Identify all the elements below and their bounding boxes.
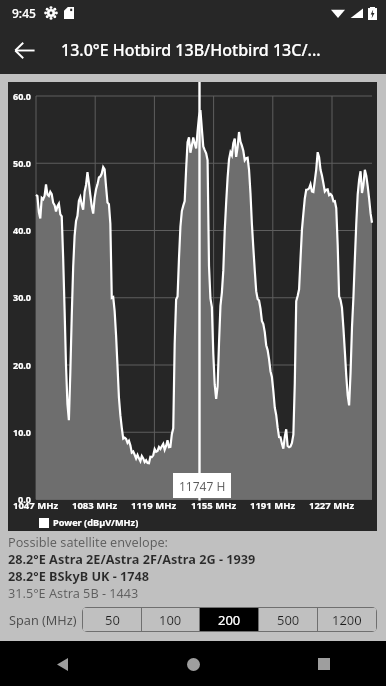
- staticText: Possible satellite envelope:: [8, 533, 169, 550]
- staticText: 0.0: [18, 493, 31, 505]
- button[interactable]: 200: [200, 608, 258, 631]
- button[interactable]: 1200: [318, 608, 376, 631]
- button[interactable]: 500: [259, 608, 317, 631]
- staticText: 100: [159, 611, 182, 629]
- button[interactable]: 100: [142, 608, 199, 631]
- staticText: 28.2°E Astra 2E/Astra 2F/Astra 2G - 1939: [8, 550, 256, 567]
- staticText: 20.0: [13, 359, 31, 371]
- button[interactable]: Back: [40, 642, 84, 686]
- staticText: 30.0: [13, 291, 31, 303]
- button[interactable]: Recent apps: [302, 642, 346, 686]
- button[interactable]: 50: [83, 608, 141, 631]
- staticText: 1119 MHz: [131, 499, 177, 512]
- staticText: 9:45: [12, 5, 36, 21]
- staticText: 1191 MHz: [250, 499, 296, 512]
- staticText: 13.0°E Hotbird 13B/Hotbird 13C/...: [61, 39, 321, 61]
- staticText: 50: [105, 611, 120, 629]
- staticText: Span (MHz): [9, 611, 77, 628]
- staticText: 1227 MHz: [309, 499, 355, 512]
- staticText: 1047 MHz: [13, 499, 59, 512]
- button[interactable]: Back: [0, 26, 48, 74]
- staticText: 60.0: [13, 90, 31, 102]
- staticText: 200: [218, 611, 241, 629]
- staticText: 11747 H: [179, 478, 226, 494]
- staticText: 1155 MHz: [191, 499, 237, 512]
- staticText: Power (dBµV/MHz): [53, 516, 139, 529]
- staticText: 1083 MHz: [72, 499, 118, 512]
- staticText: 50.0: [13, 157, 31, 169]
- staticText: 31.5°E Astra 5B - 1443: [8, 584, 139, 601]
- staticText: 40.0: [13, 224, 31, 236]
- staticText: 1200: [332, 611, 362, 629]
- staticText: 28.2°E BSkyB UK - 1748: [8, 567, 150, 584]
- button[interactable]: Home: [171, 642, 215, 686]
- staticText: 500: [277, 611, 300, 629]
- staticText: 10.0: [13, 426, 31, 438]
